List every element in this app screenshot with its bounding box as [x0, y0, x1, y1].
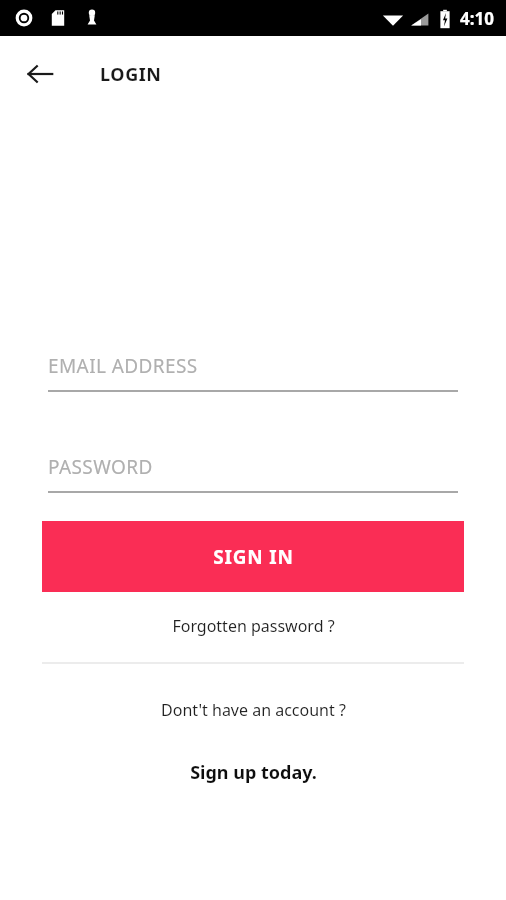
staticText: Forgotten password ?: [172, 615, 335, 637]
staticText: 4:10: [460, 7, 494, 30]
button[interactable]: Sign up today.: [0, 756, 506, 788]
button[interactable]: Forgotten password ?: [0, 608, 506, 644]
staticText: Sign up today.: [190, 760, 317, 785]
staticText: PASSWORD: [48, 454, 153, 480]
button[interactable]: PASSWORD: [48, 454, 458, 493]
button[interactable]: SIGN IN: [42, 521, 464, 592]
staticText: Dont't have an account ?: [161, 699, 346, 721]
staticText: LOGIN: [100, 62, 162, 87]
button[interactable]: Back: [16, 50, 64, 98]
button[interactable]: EMAIL ADDRESS: [48, 353, 458, 392]
staticText: SIGN IN: [213, 544, 294, 570]
staticText: EMAIL ADDRESS: [48, 353, 198, 379]
